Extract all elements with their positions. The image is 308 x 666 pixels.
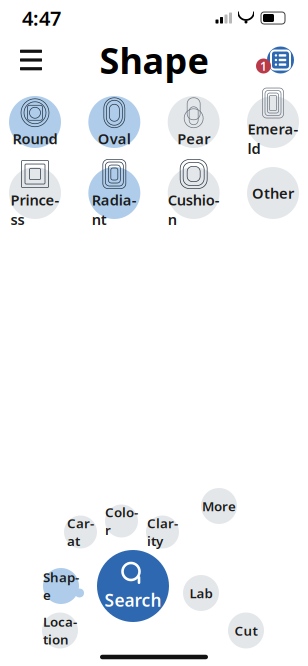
staticText: Search — [104, 588, 161, 611]
staticText: Princess — [10, 190, 59, 229]
button[interactable]: Shape — [43, 568, 79, 604]
button[interactable]: Saved list, 1 item — [256, 45, 294, 75]
staticText: Carat — [67, 514, 94, 550]
button[interactable]: Carat — [64, 515, 97, 548]
button[interactable]: Oval — [88, 96, 140, 148]
button[interactable]: Menu — [14, 41, 48, 78]
staticText: Pear — [177, 129, 210, 148]
button[interactable]: Clarity — [146, 515, 179, 548]
staticText: 4:47 — [22, 5, 61, 31]
button[interactable]: Location — [42, 612, 78, 648]
button[interactable]: Cut — [228, 612, 264, 648]
button[interactable]: Lab — [183, 575, 219, 611]
staticText: Emerald — [247, 119, 298, 158]
button[interactable]: Princess — [9, 167, 61, 219]
staticText: Shape — [43, 568, 79, 604]
button[interactable]: More — [201, 488, 237, 524]
staticText: More — [202, 497, 236, 515]
button[interactable]: Other — [247, 167, 299, 219]
staticText: Clarity — [147, 514, 178, 550]
staticText: Other — [252, 183, 294, 203]
staticText: Oval — [98, 129, 131, 148]
staticText: Cut — [234, 622, 257, 639]
button[interactable]: Round — [9, 96, 61, 148]
button[interactable]: Search — [97, 550, 169, 622]
button[interactable]: Pear — [168, 96, 220, 148]
staticText: 1 — [260, 58, 267, 74]
staticText: Cushion — [168, 190, 220, 229]
staticText: Color — [105, 503, 138, 539]
staticText: Shape — [99, 36, 208, 84]
staticText: Radiant — [92, 190, 137, 229]
button[interactable]: Cushion — [168, 167, 220, 219]
staticText: Round — [12, 129, 57, 148]
button[interactable]: Radiant — [88, 167, 140, 219]
button[interactable]: Color — [105, 504, 138, 537]
button[interactable]: Emerald — [247, 96, 299, 148]
staticText: Lab — [189, 584, 212, 602]
staticText: Location — [43, 613, 77, 648]
